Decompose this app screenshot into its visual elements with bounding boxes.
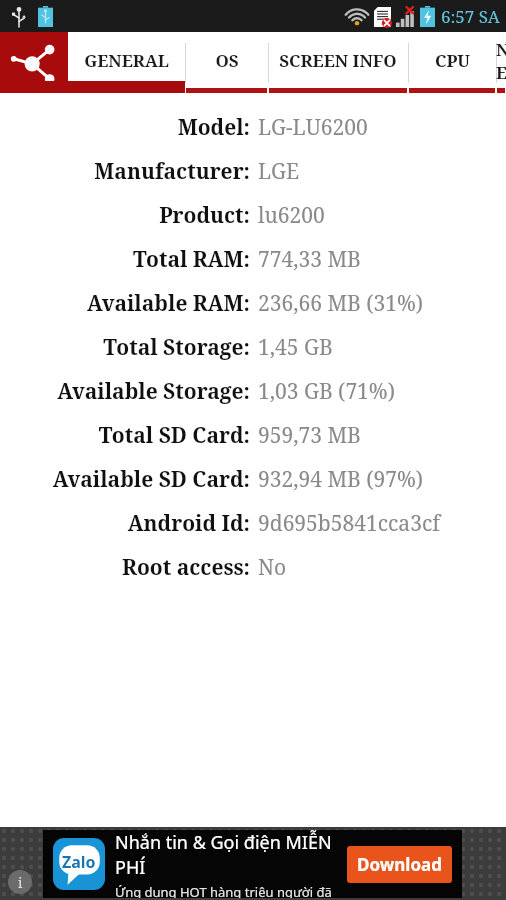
staticText: 932,94 MB (97%) <box>258 465 424 494</box>
staticText: Total RAM: <box>133 245 250 274</box>
staticText: Product: <box>159 201 250 230</box>
staticText: CPU <box>435 49 470 72</box>
button[interactable]: OS <box>185 32 268 93</box>
button[interactable]: Android Id: <box>0 501 506 545</box>
button[interactable]: Ad information <box>8 870 32 894</box>
button[interactable]: Total SD Card: <box>0 413 506 457</box>
button[interactable]: Manufacturer: <box>0 149 506 193</box>
staticText: 236,66 MB (31%) <box>258 289 424 318</box>
button[interactable]: GENERAL <box>68 32 185 93</box>
button[interactable]: Download <box>347 846 452 883</box>
staticText: 959,73 MB <box>258 421 361 450</box>
staticText: 1,45 GB <box>258 333 333 362</box>
button[interactable]: Available RAM: <box>0 281 506 325</box>
button[interactable]: SCREEN INFO <box>268 32 408 93</box>
staticText: 9d695b5841cca3cf <box>258 509 441 538</box>
staticText: SCREEN INFO <box>279 49 397 72</box>
staticText: Manufacturer: <box>94 157 250 186</box>
staticText: LGE <box>258 157 300 186</box>
button[interactable]: Available Storage: <box>0 369 506 413</box>
button[interactable]: CPU <box>408 32 496 93</box>
button[interactable]: App icon <box>0 32 68 93</box>
button[interactable]: Ad information <box>0 827 506 900</box>
staticText: 1,03 GB (71%) <box>258 377 395 406</box>
staticText: 774,33 MB <box>258 245 361 274</box>
button[interactable]: Total Storage: <box>0 325 506 369</box>
button[interactable]: Model: <box>0 105 506 149</box>
staticText: Available SD Card: <box>52 465 250 494</box>
staticText: Nhắn tin & Gọi điện MIỄN PHÍ <box>115 830 347 880</box>
button[interactable]: Available SD Card: <box>0 457 506 501</box>
staticText: Total SD Card: <box>98 421 250 450</box>
button[interactable]: NE <box>496 32 506 93</box>
button[interactable]: Total RAM: <box>0 237 506 281</box>
staticText: Model: <box>177 113 250 142</box>
staticText: Total Storage: <box>103 333 250 362</box>
button[interactable]: Product: <box>0 193 506 237</box>
staticText: No <box>258 553 287 582</box>
staticText: Available Storage: <box>57 377 250 406</box>
staticText: GENERAL <box>84 49 169 72</box>
staticText: Ứng dụng HOT hàng triệu người đã sử dụng <box>115 883 347 898</box>
staticText: Available RAM: <box>87 289 250 318</box>
staticText: Root access: <box>121 553 250 582</box>
staticText: 6:57 SA <box>441 5 500 28</box>
staticText: i <box>18 873 23 892</box>
button[interactable]: Root access: <box>0 545 506 589</box>
staticText: Android Id: <box>127 509 250 538</box>
staticText: lu6200 <box>258 201 325 230</box>
staticText: Download <box>357 853 442 876</box>
staticText: LG-LU6200 <box>258 113 368 142</box>
staticText: Zalo <box>62 851 96 873</box>
staticText: OS <box>215 49 239 72</box>
staticText: NE <box>496 38 506 84</box>
